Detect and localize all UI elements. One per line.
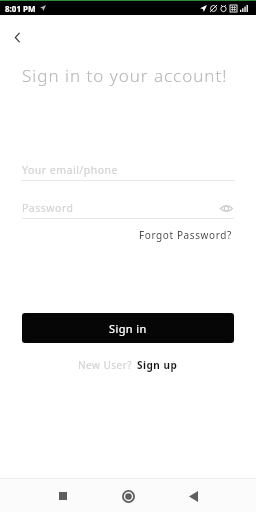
staticText: Password [22, 201, 74, 215]
button[interactable]: Home [113, 481, 143, 511]
staticText: New User? [78, 358, 133, 372]
button[interactable]: Recent apps [48, 481, 78, 511]
button[interactable]: Show password [218, 200, 234, 216]
staticText: 8:01 PM [5, 3, 36, 14]
button[interactable]: Sign up [137, 356, 178, 374]
button[interactable]: Back [178, 481, 208, 511]
button[interactable]: Password [22, 197, 234, 219]
button[interactable]: Your email/phone [22, 159, 234, 181]
staticText: Sign in to your account! [22, 64, 228, 87]
button[interactable]: Sign in [22, 313, 234, 343]
staticText: Forgot Password? [139, 228, 232, 242]
staticText: Sign up [137, 358, 178, 372]
button[interactable]: Forgot Password? [137, 225, 234, 245]
staticText: Your email/phone [22, 163, 118, 177]
staticText: Sign in [109, 321, 147, 336]
button[interactable]: Back [3, 23, 31, 51]
